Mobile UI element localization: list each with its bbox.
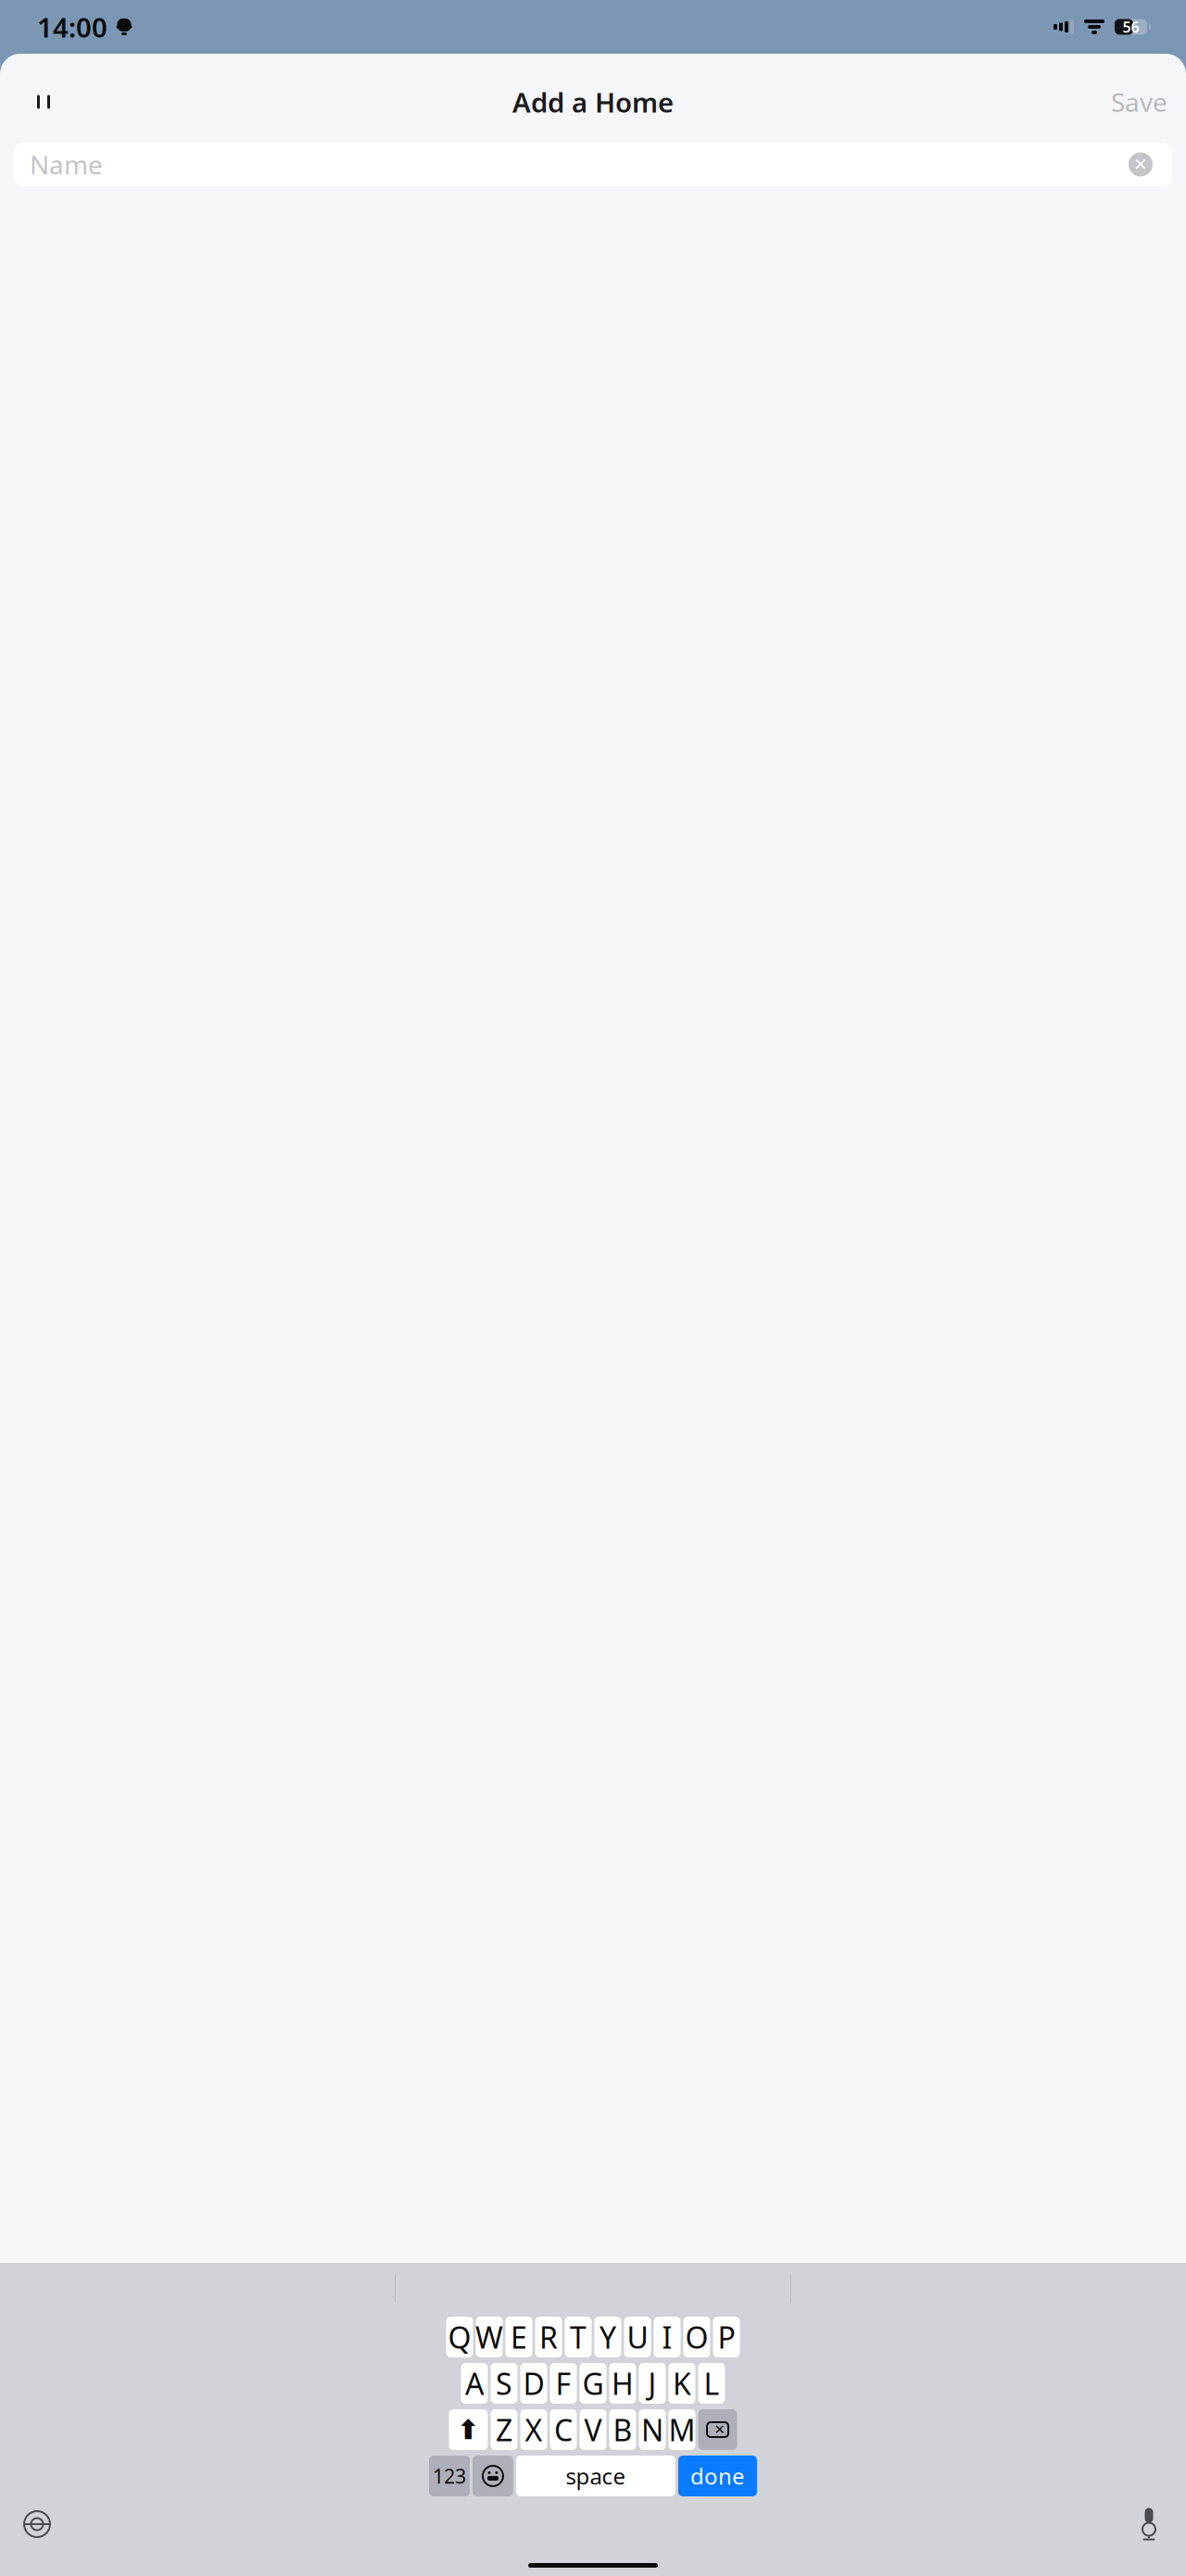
button[interactable]: S xyxy=(491,2363,517,2404)
staticText: ⬆ xyxy=(457,2414,480,2445)
button[interactable]: J xyxy=(639,2363,666,2404)
staticText: Q xyxy=(448,2317,471,2357)
button[interactable]: I xyxy=(654,2317,681,2357)
staticText: W xyxy=(475,2317,503,2357)
staticText: E xyxy=(511,2317,527,2357)
staticText: U xyxy=(627,2317,648,2357)
button[interactable]: Back xyxy=(19,80,69,124)
button[interactable]: B xyxy=(609,2409,636,2450)
staticText: F xyxy=(555,2364,571,2403)
staticText: 123 xyxy=(433,2463,466,2489)
staticText: 56 xyxy=(1123,17,1139,37)
staticText: H xyxy=(612,2364,634,2403)
staticText: I xyxy=(662,2317,672,2357)
button[interactable]: Shift xyxy=(449,2409,488,2450)
button[interactable]: T xyxy=(565,2317,592,2357)
staticText: A xyxy=(465,2364,484,2403)
staticText: D xyxy=(523,2364,544,2403)
staticText: ✕ xyxy=(1133,155,1148,174)
staticText: Add a Home xyxy=(512,84,674,120)
staticText: C xyxy=(554,2410,573,2449)
button[interactable]: M xyxy=(669,2409,695,2450)
button[interactable]: P xyxy=(713,2317,740,2357)
button[interactable]: F xyxy=(550,2363,577,2404)
button[interactable]: E xyxy=(505,2317,532,2357)
staticText: B xyxy=(613,2410,632,2449)
button[interactable]: done xyxy=(678,2456,757,2496)
button[interactable]: V xyxy=(580,2409,606,2450)
staticText: Z xyxy=(496,2410,512,2449)
staticText: V xyxy=(584,2410,602,2449)
button[interactable]: G xyxy=(580,2363,606,2404)
button[interactable]: Q xyxy=(446,2317,473,2357)
button[interactable]: D xyxy=(520,2363,547,2404)
button[interactable]: Save xyxy=(1111,80,1167,124)
button[interactable]: Delete xyxy=(698,2409,737,2450)
staticText: O xyxy=(685,2317,708,2357)
button[interactable]: U xyxy=(624,2317,651,2357)
button[interactable]: Z xyxy=(491,2409,517,2450)
staticText: G xyxy=(582,2364,604,2403)
staticText: Name xyxy=(30,147,103,182)
button[interactable]: Clear text xyxy=(1125,149,1156,180)
staticText: Y xyxy=(599,2317,616,2357)
staticText: done xyxy=(690,2461,745,2491)
button[interactable]: 123 xyxy=(429,2456,470,2496)
button[interactable]: X xyxy=(520,2409,547,2450)
button[interactable]: A xyxy=(461,2363,488,2404)
button[interactable]: Emoji xyxy=(473,2456,513,2496)
button[interactable]: O xyxy=(683,2317,710,2357)
staticText: N xyxy=(641,2410,663,2449)
staticText: X xyxy=(525,2410,543,2449)
button[interactable]: L xyxy=(698,2363,725,2404)
staticText: P xyxy=(718,2317,735,2357)
staticText: L xyxy=(704,2364,719,2403)
button[interactable]: Y xyxy=(594,2317,621,2357)
staticText: R xyxy=(539,2317,558,2357)
staticText: 14:00 xyxy=(37,9,107,45)
staticText: T xyxy=(570,2317,587,2357)
staticText: space xyxy=(566,2461,626,2491)
button[interactable]: H xyxy=(609,2363,636,2404)
staticText: K xyxy=(673,2364,691,2403)
staticText: S xyxy=(496,2364,512,2403)
staticText: ✕ xyxy=(714,2422,725,2437)
button[interactable]: R xyxy=(535,2317,562,2357)
staticText: M xyxy=(669,2410,695,2449)
staticText: J xyxy=(648,2364,656,2403)
button[interactable]: Change keyboard xyxy=(15,2504,59,2545)
button[interactable]: Dictate xyxy=(1127,2504,1171,2545)
button[interactable]: C xyxy=(550,2409,577,2450)
button[interactable]: N xyxy=(639,2409,666,2450)
button[interactable]: space xyxy=(516,2456,675,2496)
button[interactable]: W xyxy=(476,2317,503,2357)
staticText: Save xyxy=(1111,85,1167,119)
button[interactable]: K xyxy=(669,2363,695,2404)
